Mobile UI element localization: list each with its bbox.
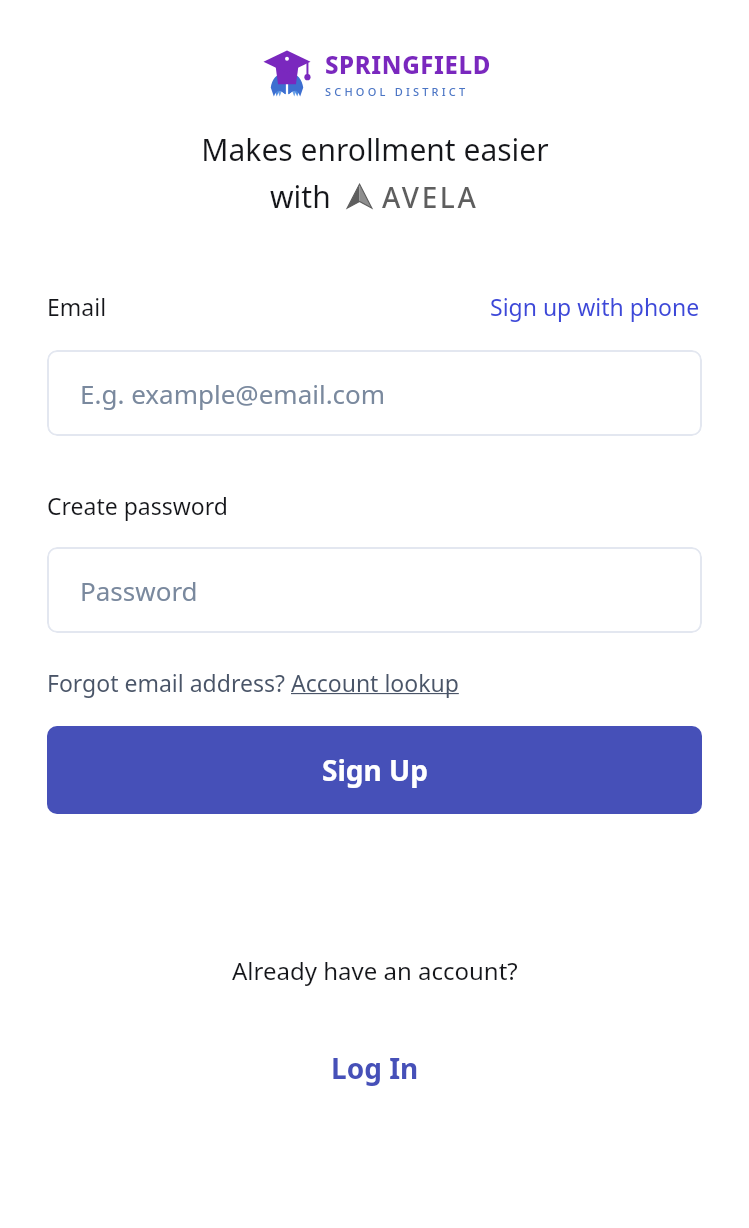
staticText: Create password [47, 490, 228, 521]
staticText: Email [47, 291, 107, 322]
staticText: SPRINGFIELD [325, 48, 491, 81]
button[interactable]: Log In [321, 1045, 429, 1091]
staticText: Password [80, 573, 198, 608]
staticText: with [270, 176, 331, 217]
staticText: Already have an account? [232, 954, 518, 987]
staticText: Account lookup [291, 667, 459, 698]
button[interactable]: E.g. example@email.com [47, 350, 702, 436]
staticText: Sign Up [322, 751, 428, 789]
staticText: SCHOOL DISTRICT [325, 84, 469, 99]
button[interactable]: Sign Up [47, 726, 702, 814]
staticText: AVELA [382, 178, 479, 216]
button[interactable]: Sign up with phone [488, 289, 702, 324]
button[interactable]: Password [47, 547, 702, 633]
button[interactable]: Account lookup [291, 665, 459, 700]
staticText: Log In [331, 1049, 419, 1087]
staticText: Forgot email address? [47, 667, 291, 698]
staticText: Sign up with phone [490, 291, 700, 322]
staticText: E.g. example@email.com [80, 376, 386, 411]
other: Springfield School District logo [259, 45, 315, 101]
staticText: Makes enrollment easier [201, 129, 549, 170]
